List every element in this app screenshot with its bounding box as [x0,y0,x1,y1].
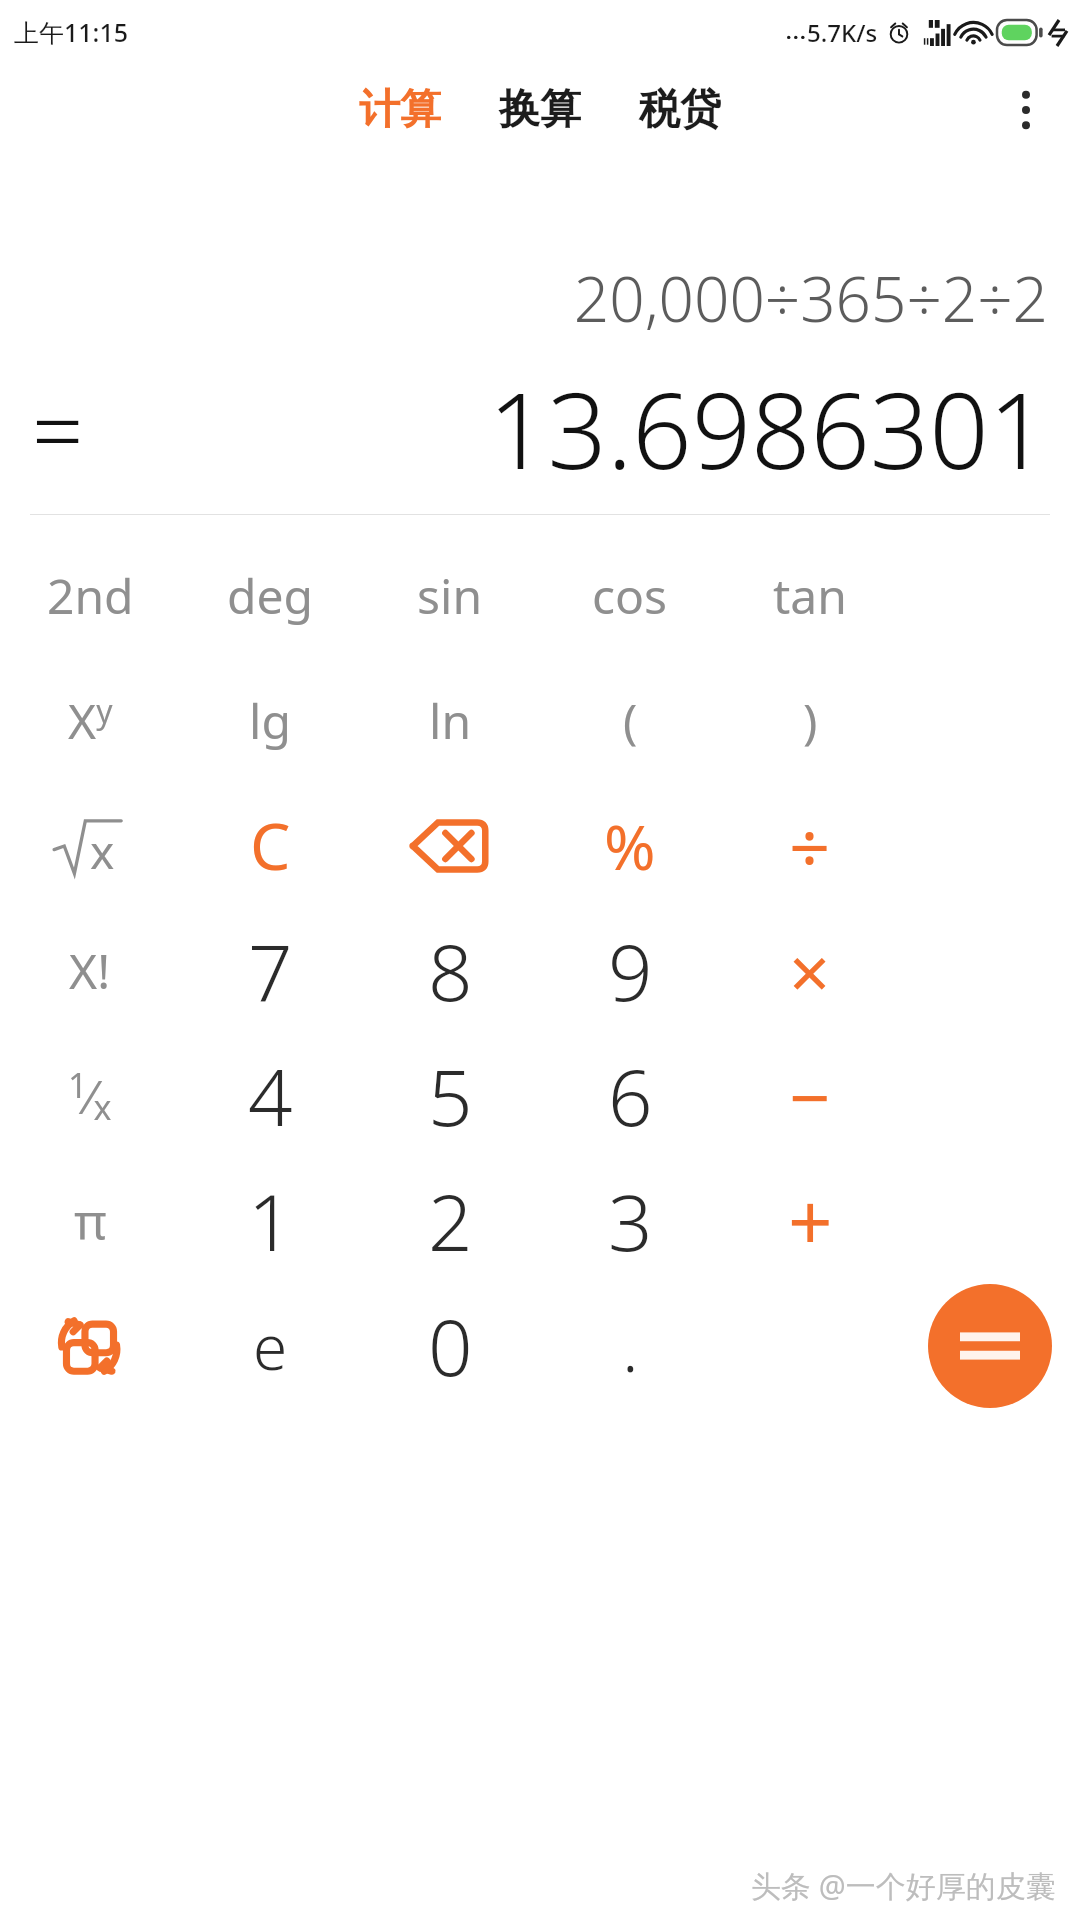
staticText: 1⁄x [68,1062,112,1130]
button[interactable]: Delete [360,783,540,908]
button[interactable]: sin [360,533,540,658]
button[interactable]: 3 [540,1158,720,1283]
button[interactable]: ln [360,658,540,783]
button[interactable]: − [720,1033,900,1158]
button[interactable]: 7 [180,908,360,1033]
staticText: 3 [608,1168,653,1274]
staticText: deg [227,563,314,628]
staticText: 2 [428,1168,473,1274]
staticText: 上午11:15 [14,15,129,49]
button[interactable]: More options [998,82,1054,138]
staticText: x [90,820,115,883]
button[interactable]: + [720,1158,900,1283]
button[interactable]: x [0,783,180,908]
staticText: 6 [608,1043,653,1149]
button[interactable]: 9 [540,908,720,1033]
staticText: . [622,1299,639,1392]
button[interactable]: 税贷 [629,78,731,142]
staticText: = [32,368,84,491]
staticText: 计算 [359,84,441,136]
button[interactable]: 1 [180,1158,360,1283]
staticText: e [253,1304,288,1388]
button[interactable]: . [540,1283,720,1408]
button[interactable]: Equals [900,1283,1080,1408]
staticText: 8 [428,918,473,1024]
button[interactable]: 4 [180,1033,360,1158]
button[interactable]: 计算 [349,78,451,142]
button[interactable]: ) [720,658,900,783]
button[interactable]: cos [540,533,720,658]
staticText: + [788,1168,833,1274]
button[interactable]: lg [180,658,360,783]
staticText: C [250,802,291,889]
staticText: 5 [428,1043,473,1149]
staticText: − [789,1047,831,1145]
button[interactable]: 6 [540,1033,720,1158]
button[interactable]: 1⁄x [0,1033,180,1158]
button[interactable]: 0 [360,1283,540,1408]
staticText: 4 [248,1043,293,1149]
staticText: ( [623,688,638,753]
button[interactable]: deg [180,533,360,658]
button[interactable]: e [180,1283,360,1408]
button[interactable]: π [0,1158,180,1283]
staticText: tan [773,563,847,628]
button[interactable]: Convert [0,1283,180,1408]
button[interactable]: 5 [360,1033,540,1158]
staticText: 13.6986301 [84,358,1048,500]
staticText: cos [592,563,668,628]
staticText: ln [429,688,472,753]
button[interactable]: ( [540,658,720,783]
staticText: lg [249,688,291,753]
button[interactable]: % [540,783,720,908]
staticText: × [789,922,831,1020]
button[interactable]: ÷ [720,783,900,908]
button[interactable]: C [180,783,360,908]
staticText: 20,000÷365÷2÷2 [32,256,1048,340]
staticText: 换算 [499,84,581,136]
staticText: 0 [428,1293,473,1399]
staticText: 9 [608,918,653,1024]
staticText: 税贷 [639,84,721,136]
staticText: X! [69,938,111,1003]
staticText: sin [417,563,483,628]
staticText: π [74,1187,107,1255]
button[interactable]: 8 [360,908,540,1033]
button[interactable]: 2 [360,1158,540,1283]
staticText: ) [803,688,818,753]
staticText: % [604,804,656,888]
staticText: Xy [68,688,113,753]
button[interactable]: 换算 [489,78,591,142]
button[interactable]: Xy [0,658,180,783]
staticText: 7 [248,918,293,1024]
button[interactable]: tan [720,533,900,658]
button[interactable]: X! [0,908,180,1033]
button[interactable]: × [720,908,900,1033]
staticText: 头条 @一个好厚的皮囊 [751,1865,1056,1906]
staticText: 1 [248,1168,293,1274]
staticText: 5.7K/s [807,16,878,49]
staticText: ÷ [789,797,831,895]
button[interactable]: 2nd [0,533,180,658]
staticText: 2nd [47,563,134,628]
